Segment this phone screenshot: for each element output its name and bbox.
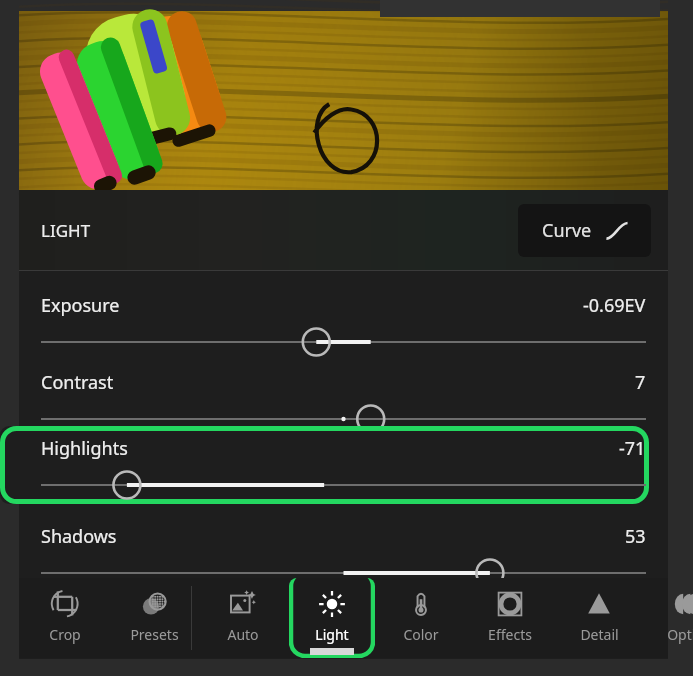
staticText: Shadows: [41, 524, 117, 549]
staticText: Effects: [488, 625, 532, 644]
staticText: Color: [403, 625, 439, 644]
button[interactable]: Detail: [556, 578, 642, 658]
button[interactable]: Color: [378, 578, 464, 658]
button[interactable]: Contrast: [19, 360, 668, 438]
staticText: Crop: [49, 625, 81, 644]
button[interactable]: Optics: [645, 578, 693, 658]
staticText: LIGHT: [41, 219, 91, 242]
staticText: -71: [619, 436, 646, 461]
button[interactable]: Presets: [111, 578, 197, 658]
button[interactable]: Auto: [200, 578, 286, 658]
button[interactable]: Highlights: [0, 426, 649, 504]
staticText: 53: [625, 524, 646, 549]
staticText: -0.69EV: [583, 293, 646, 318]
staticText: Detail: [580, 625, 619, 644]
staticText: Presets: [130, 625, 179, 644]
staticText: Light: [315, 625, 349, 644]
button[interactable]: Crop: [22, 578, 108, 658]
staticText: Curve: [542, 218, 592, 243]
staticText: Auto: [227, 625, 259, 644]
button[interactable]: Effects: [467, 578, 553, 658]
button[interactable]: Shadows: [19, 514, 668, 592]
button[interactable]: Exposure: [19, 283, 668, 361]
staticText: Exposure: [41, 293, 120, 318]
button[interactable]: Light: [289, 578, 375, 658]
staticText: Contrast: [41, 370, 114, 395]
staticText: Optics: [667, 625, 693, 644]
button[interactable]: Curve: [518, 204, 651, 257]
staticText: Highlights: [41, 436, 128, 461]
staticText: 7: [635, 370, 646, 395]
